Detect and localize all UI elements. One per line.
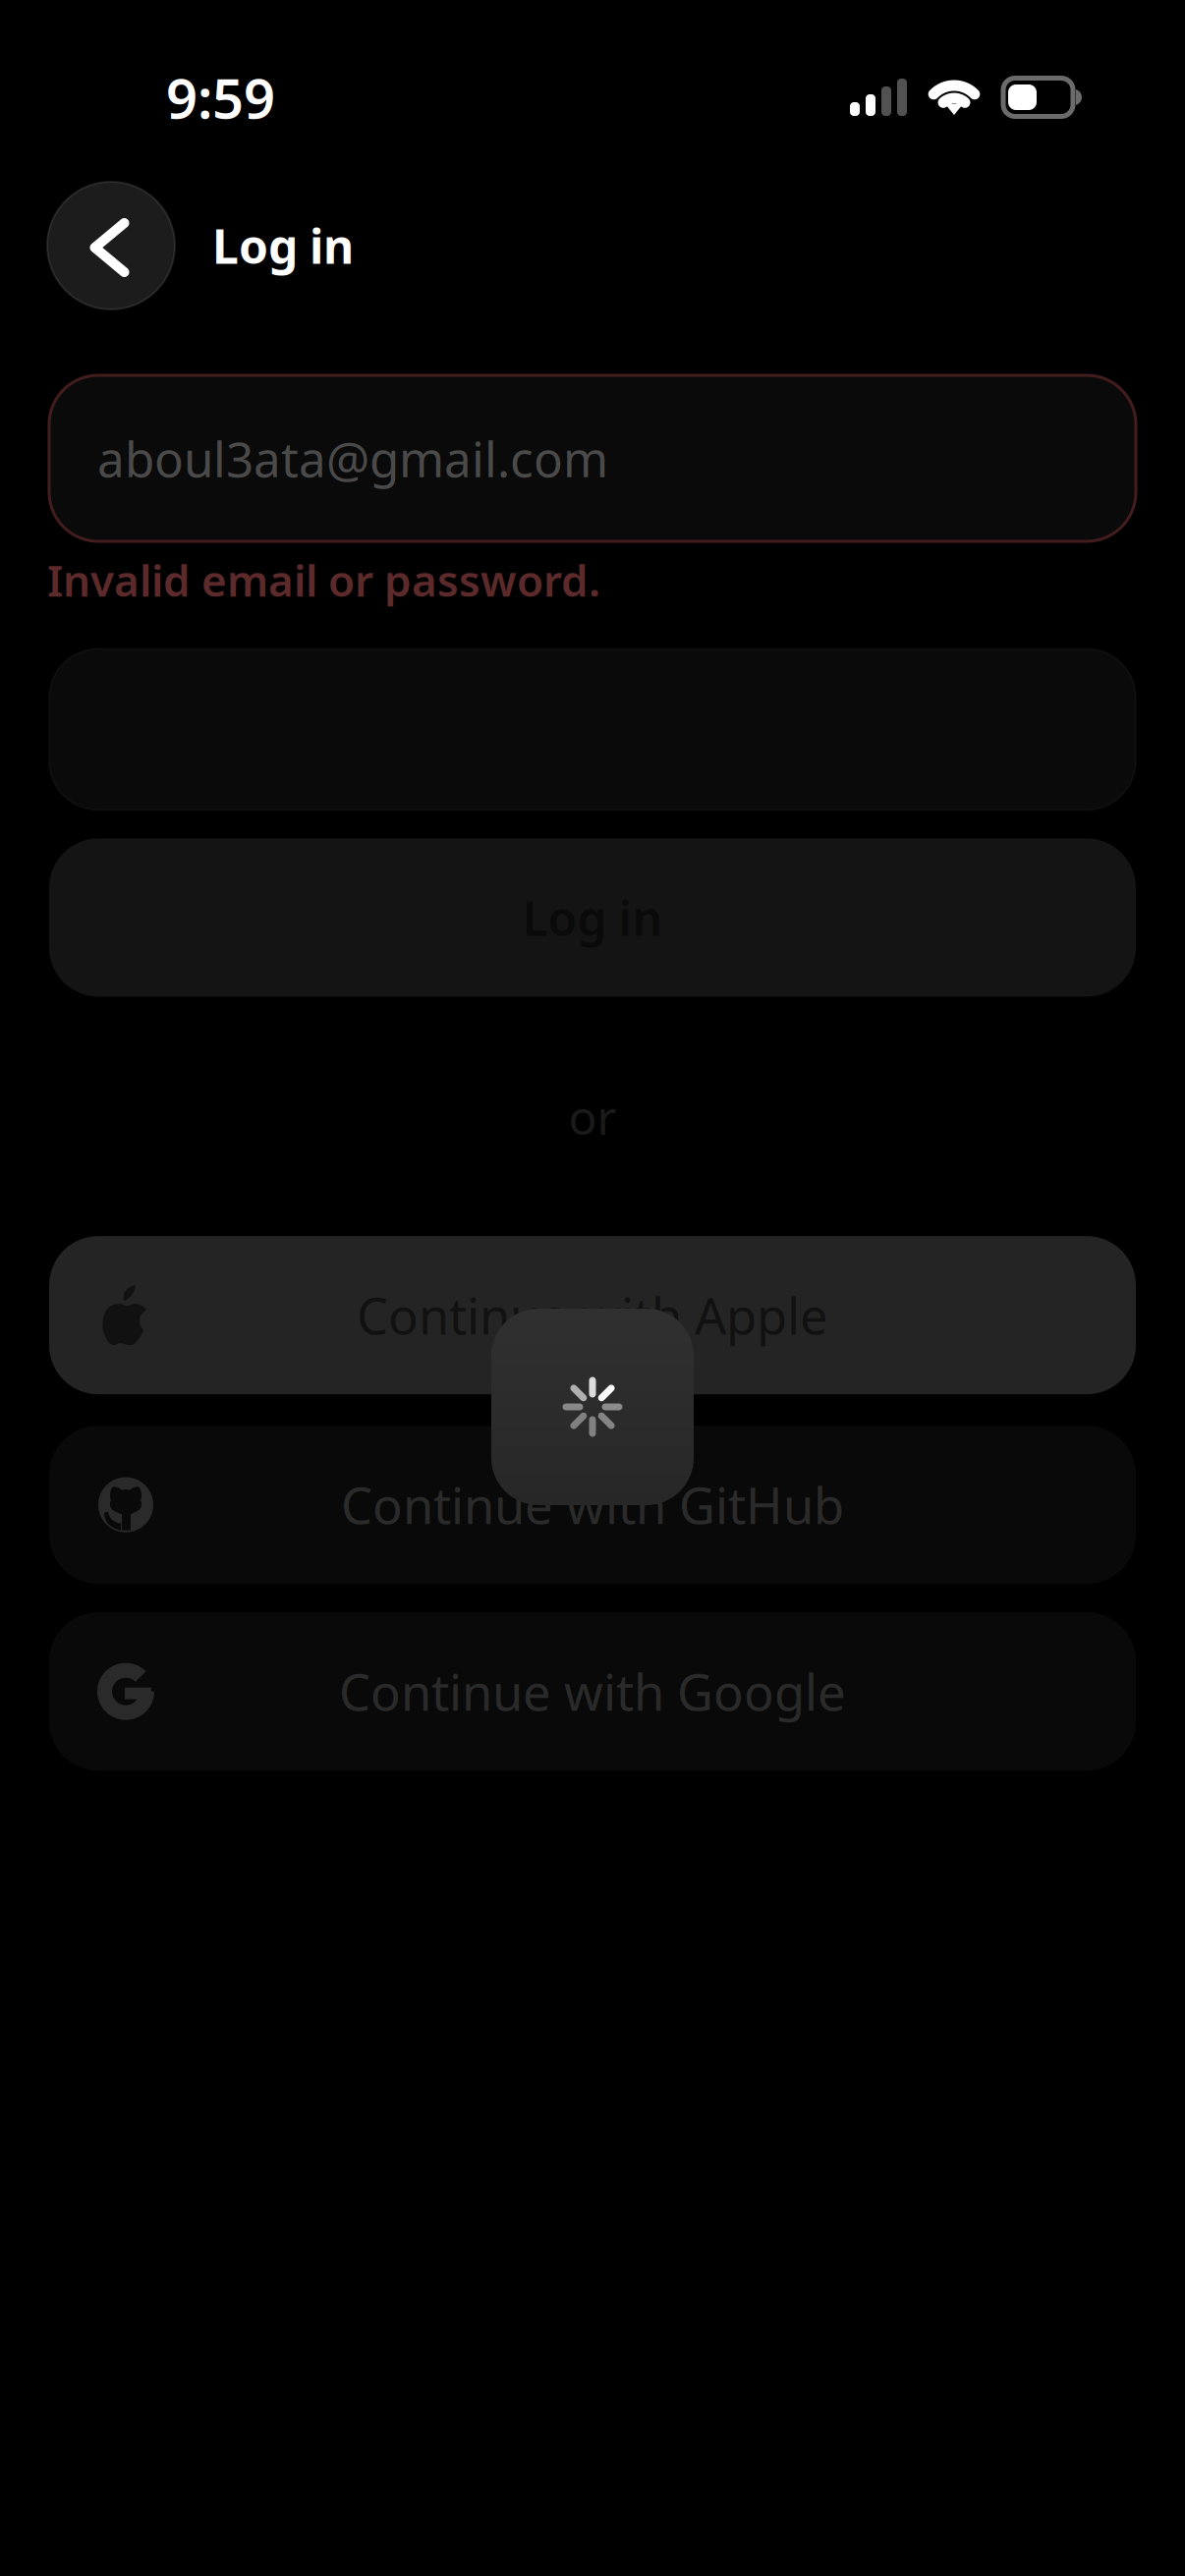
staticText: Continue with GitHub <box>341 1472 844 1538</box>
staticText: Log in <box>522 886 663 949</box>
staticText: Continue with Google <box>339 1658 846 1725</box>
staticText: aboul3ata@gmail.com <box>97 426 608 490</box>
staticText: or <box>568 1085 617 1148</box>
staticText: Invalid email or password. <box>47 551 600 609</box>
button[interactable]: aboul3ata@gmail.com <box>49 375 1136 541</box>
button[interactable]: Continue with GitHub <box>49 1426 1136 1584</box>
staticText: Continue with Apple <box>357 1282 828 1348</box>
button[interactable]: Continue with Apple <box>49 1236 1136 1394</box>
staticText: 9:59 <box>166 61 275 134</box>
button[interactable]: Back <box>47 182 175 309</box>
staticText: Log in <box>212 214 354 277</box>
button[interactable]: Continue with Google <box>49 1612 1136 1771</box>
